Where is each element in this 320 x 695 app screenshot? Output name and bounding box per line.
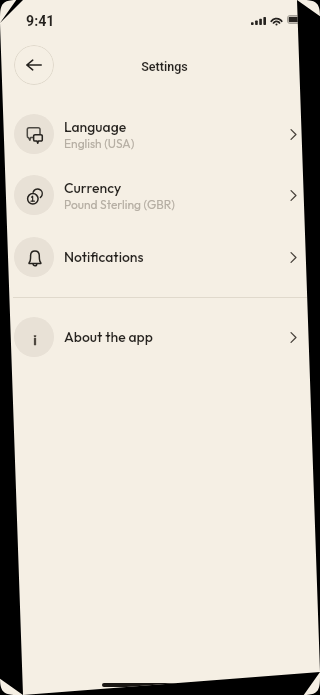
staticText: 9:41 xyxy=(26,13,55,30)
staticText: English (USA) xyxy=(64,136,135,151)
button[interactable]: Back xyxy=(14,45,54,85)
button[interactable]: About the app xyxy=(0,317,320,357)
button[interactable]: Currency xyxy=(0,175,320,215)
staticText: Notifications xyxy=(64,248,144,266)
staticText: Language xyxy=(64,118,127,136)
staticText: Pound Sterling (GBR) xyxy=(64,197,175,212)
staticText: About the app xyxy=(64,328,153,346)
staticText: Currency xyxy=(64,179,122,197)
button[interactable]: Language xyxy=(0,114,320,154)
button[interactable]: Notifications xyxy=(0,237,320,277)
staticText: Settings xyxy=(141,59,188,74)
